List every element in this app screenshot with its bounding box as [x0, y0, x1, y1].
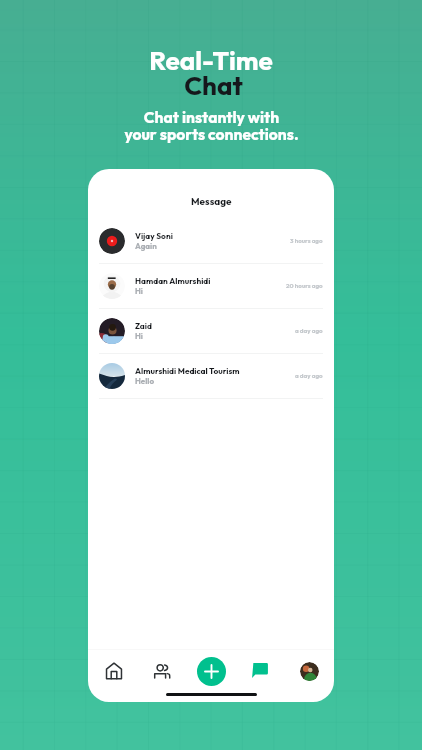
- staticText: Message: [191, 195, 232, 208]
- staticText: a day ago: [295, 327, 323, 335]
- staticText: 20 hours ago: [286, 282, 323, 290]
- button[interactable]: Home: [101, 658, 127, 684]
- button[interactable]: Zaid: [88, 309, 334, 354]
- staticText: Chat instantly with your sports connecti…: [124, 107, 299, 144]
- staticText: Chat: [184, 69, 243, 102]
- staticText: Hi: [135, 286, 143, 296]
- staticText: Real-Time: [149, 44, 273, 77]
- button[interactable]: Vijay Soni: [88, 219, 334, 264]
- staticText: Vijay Soni: [135, 231, 173, 241]
- staticText: a day ago: [295, 372, 323, 380]
- staticText: Hello: [135, 376, 155, 386]
- button[interactable]: Profile: [300, 662, 319, 681]
- button[interactable]: Hamdan Almurshidi: [88, 264, 334, 309]
- button[interactable]: New message: [197, 657, 226, 686]
- staticText: Almurshidi Medical Tourism: [135, 366, 240, 376]
- button[interactable]: Chats: [247, 658, 273, 684]
- staticText: 3 hours ago: [290, 237, 323, 245]
- staticText: Hamdan Almurshidi: [135, 276, 211, 286]
- staticText: Hi: [135, 331, 143, 341]
- staticText: Zaid: [135, 321, 152, 331]
- button[interactable]: People: [148, 658, 174, 684]
- button[interactable]: Almurshidi Medical Tourism: [88, 354, 334, 399]
- staticText: Again: [135, 241, 157, 251]
